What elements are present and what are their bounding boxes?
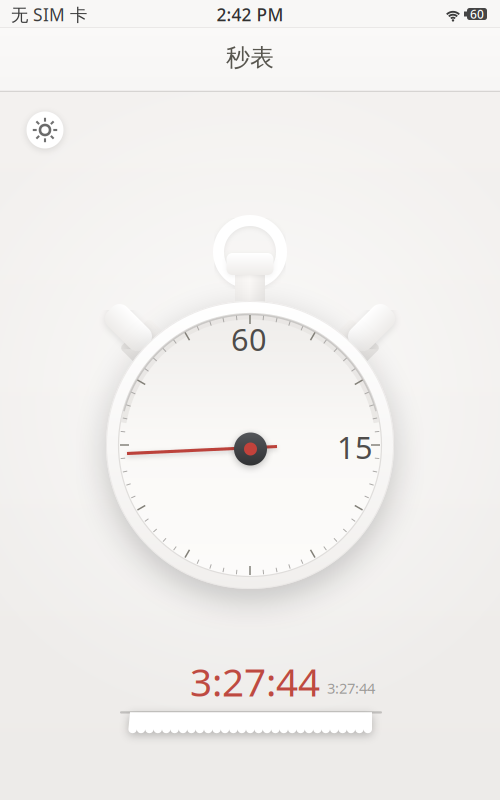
- staticText: 3:27:44: [190, 656, 320, 707]
- staticText: 60: [231, 319, 267, 359]
- button[interactable]: Records: [0, 0, 500, 800]
- staticText: 15: [337, 427, 373, 467]
- staticText: 3:27:44: [327, 678, 375, 698]
- staticText: 60: [470, 6, 484, 22]
- staticText: 秒表: [226, 43, 274, 73]
- staticText: 2:42 PM: [216, 3, 283, 26]
- staticText: 无 SIM 卡: [11, 3, 87, 26]
- button[interactable]: Brightness: [26, 111, 63, 148]
